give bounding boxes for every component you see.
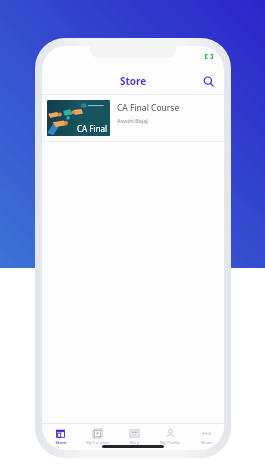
- button[interactable]: More: [188, 424, 224, 450]
- staticText: Store: [120, 74, 147, 88]
- button[interactable]: My Profile: [152, 424, 188, 450]
- staticText: My Courses: [86, 440, 109, 446]
- button[interactable]: My Courses: [79, 424, 116, 450]
- button[interactable]: Blog: [116, 424, 152, 450]
- button[interactable]: CA Final: [42, 95, 224, 141]
- staticText: Aswini Bajaj: [117, 117, 148, 124]
- staticText: CA Final: [77, 123, 107, 134]
- staticText: Blog: [130, 440, 139, 446]
- button[interactable]: Store: [42, 424, 79, 450]
- staticText: CA Final Course: [117, 102, 180, 114]
- staticText: Store: [55, 440, 67, 446]
- staticText: More: [201, 440, 212, 446]
- staticText: My Profile: [160, 440, 180, 446]
- button[interactable]: Search: [198, 71, 218, 91]
